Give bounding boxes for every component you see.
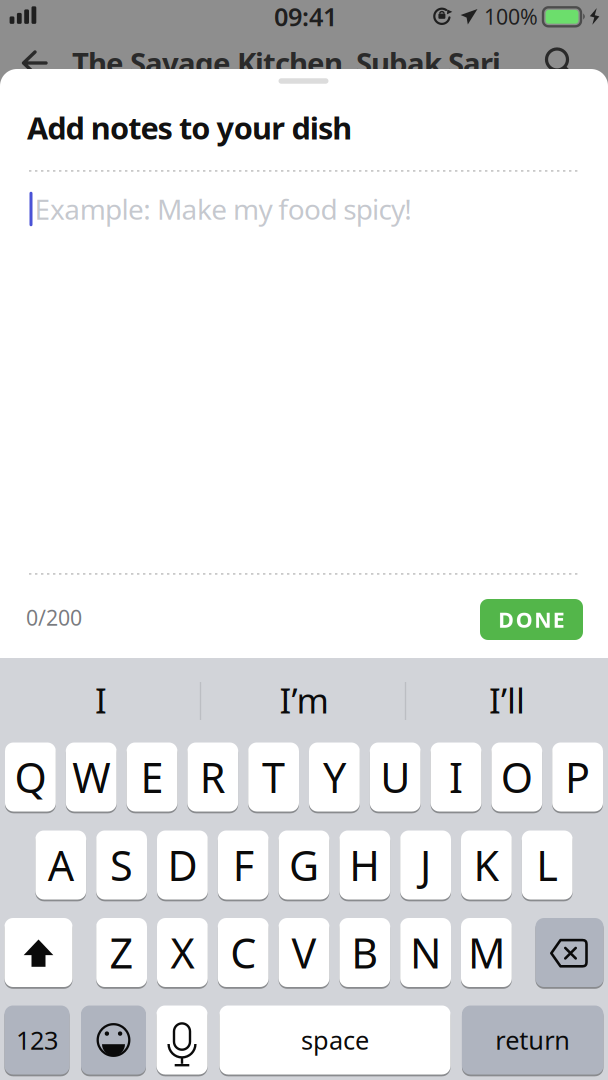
button[interactable]: U (370, 741, 421, 812)
button[interactable]: I (431, 741, 481, 812)
button[interactable]: space (219, 1004, 450, 1075)
staticText: S (110, 838, 133, 892)
staticText: O (501, 750, 533, 804)
button[interactable]: 123 (4, 1004, 69, 1075)
button[interactable]: I’m (214, 670, 394, 730)
staticText: G (289, 838, 319, 892)
button[interactable]: Back (20, 42, 50, 84)
staticText: M (468, 925, 505, 980)
button[interactable]: D (157, 829, 208, 900)
staticText: I’ll (489, 677, 525, 723)
staticText: Add notes to your dish (27, 107, 352, 148)
staticText: The Savage Kitchen, Subak Sari (72, 43, 501, 82)
staticText: Example: Make my food spicy! (34, 190, 412, 228)
staticText: X (170, 925, 194, 980)
button[interactable]: O (491, 741, 542, 812)
staticText: 100% (484, 2, 538, 31)
button[interactable]: R (187, 741, 238, 812)
staticText: J (420, 838, 431, 892)
staticText: Z (110, 925, 134, 980)
staticText: N (410, 925, 441, 980)
button[interactable]: X (157, 917, 208, 988)
button[interactable]: L (522, 829, 573, 900)
button[interactable]: Shift (4, 917, 72, 988)
staticText: L (536, 838, 558, 892)
button[interactable]: Delete (535, 917, 603, 988)
staticText: A (48, 838, 74, 892)
staticText: I (449, 750, 463, 804)
button[interactable]: N (400, 917, 451, 988)
button[interactable]: K (461, 829, 512, 900)
button[interactable]: Search (543, 46, 575, 78)
button[interactable]: M (461, 917, 512, 988)
staticText: F (233, 838, 254, 892)
button[interactable]: C (218, 917, 269, 988)
staticText: E (140, 750, 163, 804)
button[interactable]: Dictate (156, 1004, 207, 1075)
staticText: return (495, 1023, 570, 1057)
staticText: D (167, 838, 197, 892)
button[interactable]: G (279, 829, 329, 900)
staticText: DONE (498, 605, 565, 634)
button[interactable]: B (339, 917, 390, 988)
staticText: 0/200 (26, 603, 82, 632)
staticText: Q (14, 750, 46, 804)
staticText: B (351, 925, 378, 980)
staticText: I’m (279, 677, 328, 723)
staticText: C (230, 925, 256, 980)
button[interactable]: Y (309, 741, 360, 812)
button[interactable]: I’ll (417, 670, 597, 730)
staticText: space (301, 1023, 369, 1057)
button[interactable]: T (248, 741, 299, 812)
button[interactable]: A (35, 829, 86, 900)
button[interactable]: F (218, 829, 269, 900)
button[interactable]: return (462, 1004, 603, 1075)
staticText: H (349, 838, 380, 892)
staticText: W (72, 750, 110, 804)
button[interactable]: W (66, 741, 117, 812)
staticText: K (473, 838, 499, 892)
staticText: V (291, 925, 316, 980)
staticText: 123 (16, 1023, 58, 1057)
button[interactable]: DONE (480, 599, 583, 640)
staticText: Y (323, 750, 346, 804)
button[interactable]: H (339, 829, 390, 900)
staticText: T (262, 750, 285, 804)
button[interactable]: E (127, 741, 177, 812)
staticText: U (380, 750, 410, 804)
staticText: I (95, 677, 107, 723)
button[interactable]: I (11, 670, 191, 730)
staticText: R (200, 750, 226, 804)
button[interactable]: J (400, 829, 451, 900)
button[interactable]: P (552, 741, 603, 812)
staticText: P (565, 750, 590, 804)
button[interactable]: S (96, 829, 147, 900)
button[interactable]: Z (96, 917, 147, 988)
staticText: 09:41 (274, 0, 337, 33)
button[interactable]: V (279, 917, 329, 988)
button[interactable]: Q (5, 741, 56, 812)
button[interactable]: Emoji (81, 1004, 146, 1075)
